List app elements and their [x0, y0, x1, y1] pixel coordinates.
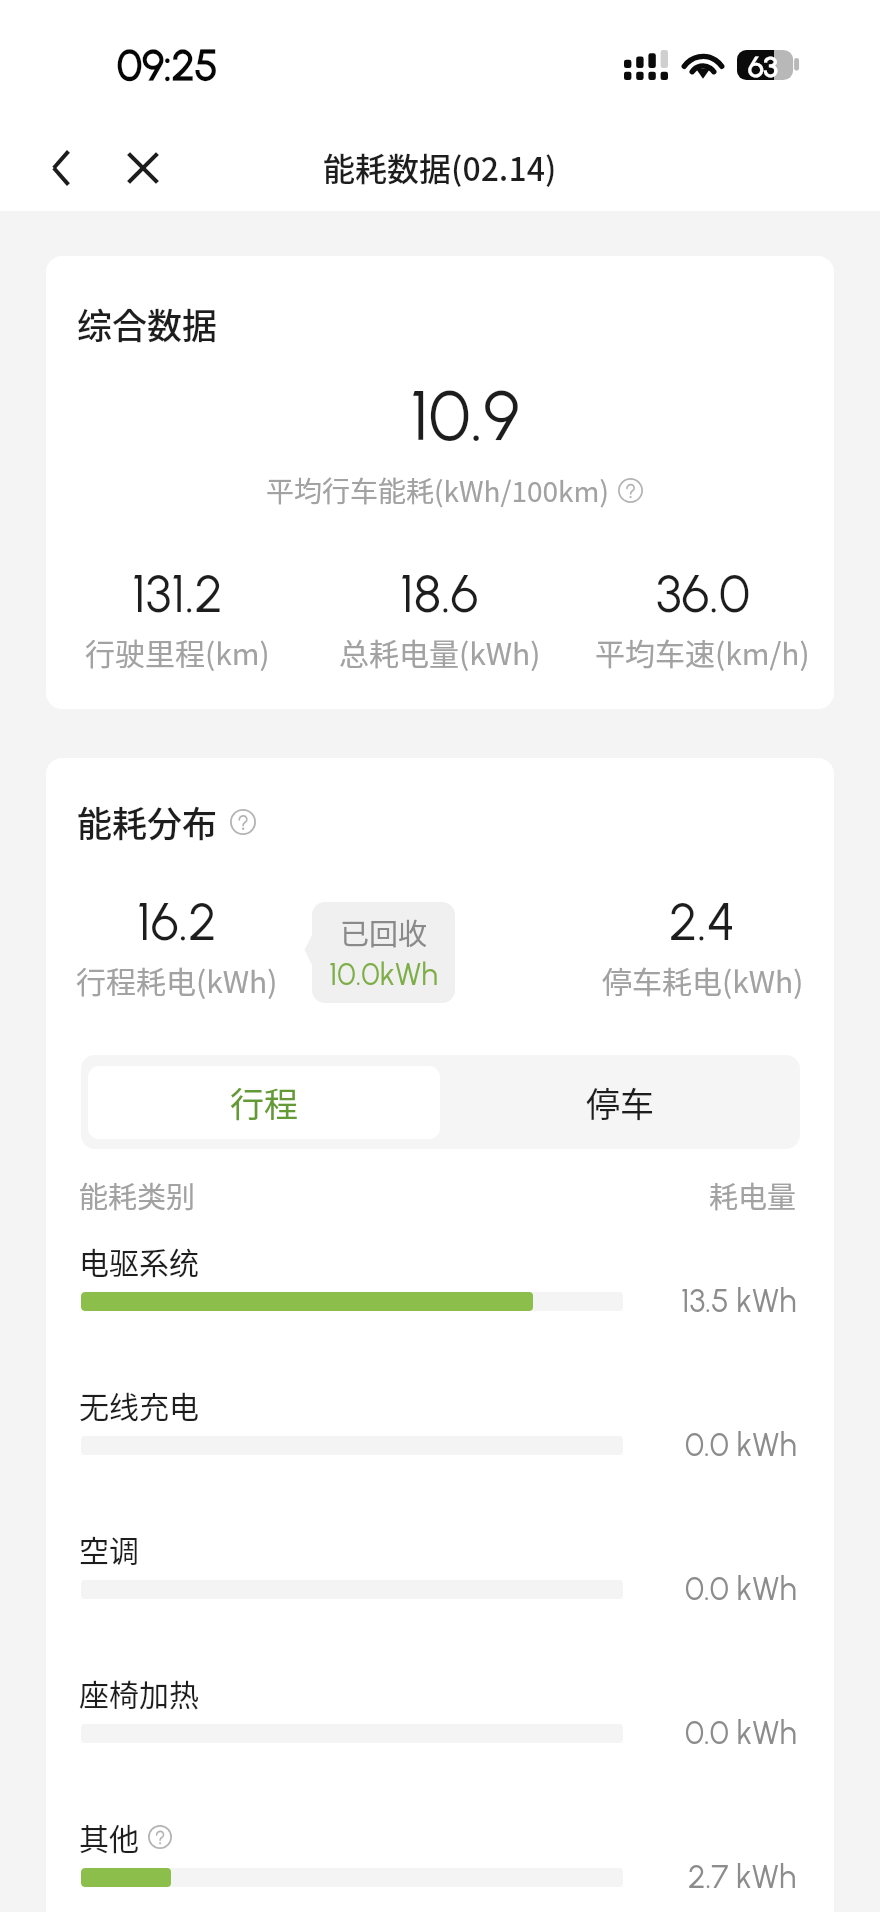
- staticText: 10.0kWh: [329, 956, 438, 993]
- staticText: 0.0 kWh: [685, 1714, 797, 1752]
- staticText: 09:25: [117, 40, 218, 90]
- staticText: 总耗电量(kWh): [339, 630, 541, 673]
- staticText: 平均行车能耗(kWh/100km): [266, 470, 609, 511]
- staticText: 63: [748, 49, 778, 79]
- staticText: 0.0 kWh: [685, 1426, 797, 1464]
- staticText: 行程: [230, 1078, 298, 1127]
- button[interactable]: 座椅加热: [46, 1671, 834, 1752]
- staticText: 16.2: [137, 891, 217, 953]
- staticText: 0.0 kWh: [685, 1570, 797, 1608]
- staticText: 无线充电: [79, 1383, 199, 1426]
- staticText: 电驱系统: [79, 1239, 199, 1282]
- staticText: 平均车速(km/h): [595, 630, 810, 673]
- staticText: 停车耗电(kWh): [602, 958, 804, 1001]
- button[interactable]: 空调: [46, 1527, 834, 1608]
- staticText: 10.9: [71, 373, 834, 457]
- staticText: 停车: [586, 1078, 654, 1127]
- staticText: 行程耗电(kWh): [76, 958, 278, 1001]
- staticText: 空调: [79, 1527, 139, 1570]
- staticText: 能耗数据(02.14): [323, 144, 557, 190]
- staticText: 能耗类别: [79, 1174, 196, 1216]
- button[interactable]: 其他: [46, 1815, 834, 1896]
- staticText: 行驶里程(km): [85, 630, 270, 673]
- button[interactable]: 行程: [88, 1066, 440, 1139]
- staticText: 36.0: [656, 563, 750, 625]
- staticText: 座椅加热: [79, 1671, 199, 1714]
- staticText: 已回收: [340, 911, 428, 953]
- staticText: 其他: [79, 1815, 139, 1858]
- staticText: 18.6: [400, 563, 479, 625]
- staticText: 2.4: [669, 891, 736, 953]
- staticText: 耗电量: [709, 1174, 797, 1216]
- staticText: 综合数据: [77, 298, 218, 349]
- button[interactable]: 电驱系统: [46, 1239, 834, 1320]
- button[interactable]: Back: [33, 139, 91, 197]
- button[interactable]: Close: [114, 139, 172, 197]
- staticText: 13.5 kWh: [681, 1282, 797, 1320]
- staticText: 能耗分布: [77, 796, 218, 847]
- button[interactable]: 停车: [440, 1055, 800, 1149]
- button[interactable]: 无线充电: [46, 1383, 834, 1464]
- staticText: 2.7 kWh: [688, 1858, 797, 1896]
- staticText: 131.2: [132, 563, 223, 625]
